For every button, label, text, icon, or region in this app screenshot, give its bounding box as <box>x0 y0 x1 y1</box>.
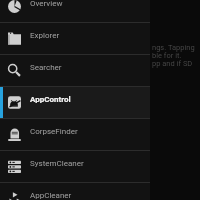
staticText: Explorer <box>30 31 60 40</box>
staticText: Overview <box>30 0 63 8</box>
staticText: SystemCleaner <box>30 159 84 168</box>
button[interactable]: AppControl <box>0 86 150 118</box>
staticText: CorpseFinder <box>30 127 78 136</box>
button[interactable]: Overview <box>0 0 150 22</box>
button[interactable]: Explorer <box>0 22 150 54</box>
staticText: Searcher <box>30 63 62 72</box>
staticText: AppControl <box>30 95 71 104</box>
button[interactable]: SystemCleaner <box>0 150 150 182</box>
button[interactable]: CorpseFinder <box>0 118 150 150</box>
button[interactable]: AppCleaner <box>0 182 150 200</box>
button[interactable]: Searcher <box>0 54 150 86</box>
staticText: ngs. Tapping ble for it. pp and if SD <box>152 43 195 68</box>
staticText: AppCleaner <box>30 191 72 200</box>
